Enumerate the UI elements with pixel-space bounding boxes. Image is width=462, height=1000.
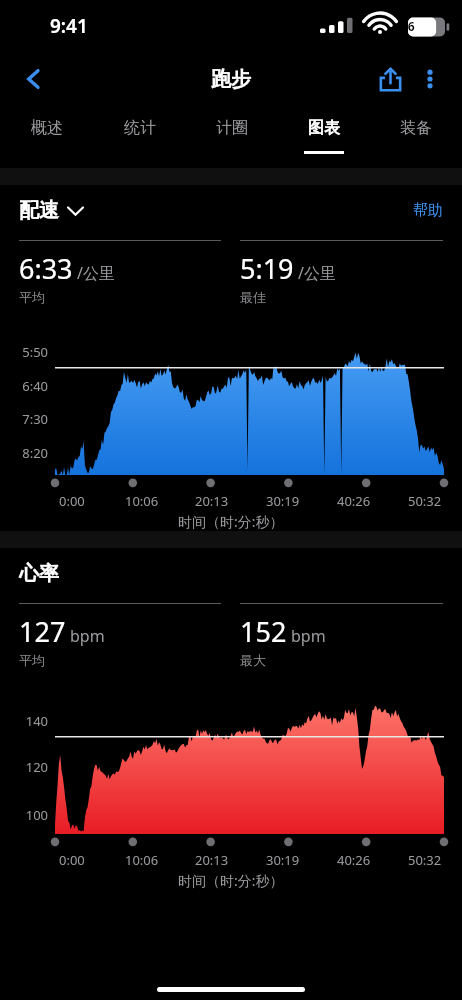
staticText: bpm [291, 625, 326, 647]
staticText: 50:32 [408, 492, 442, 510]
staticText: 最佳 [240, 289, 266, 305]
staticText: 帮助 [413, 201, 443, 220]
staticText: 30:19 [266, 851, 300, 869]
staticText: 40:26 [337, 851, 371, 869]
staticText: 40:26 [337, 492, 371, 510]
staticText: 5:50 [8, 343, 48, 361]
staticText: 平均 [19, 652, 45, 668]
staticText: 120 [8, 758, 48, 776]
button[interactable]: 概述 [0, 106, 93, 168]
staticText: 时间（时:分:秒） [178, 871, 284, 890]
staticText: 概述 [31, 118, 63, 138]
staticText: 7:30 [8, 410, 48, 428]
staticText: 140 [8, 712, 48, 730]
staticText: 配速 [19, 198, 59, 223]
staticText: /公里 [77, 262, 115, 284]
staticText: bpm [70, 625, 105, 647]
staticText: 图表 [308, 118, 340, 138]
staticText: 20:13 [195, 851, 229, 869]
staticText: 100 [8, 806, 48, 824]
button[interactable]: Share [370, 59, 410, 99]
button[interactable]: More options [410, 59, 450, 99]
staticText: 0:00 [59, 492, 85, 510]
staticText: 装备 [400, 118, 432, 138]
staticText: 最大 [240, 652, 266, 668]
staticText: 127 [19, 613, 66, 650]
staticText: 8:20 [8, 444, 48, 462]
button[interactable]: 计圈 [186, 106, 278, 168]
staticText: 152 [240, 613, 287, 650]
button[interactable]: Back [14, 59, 54, 99]
button[interactable]: 配速 [19, 198, 83, 223]
staticText: 10:06 [125, 492, 159, 510]
staticText: 时间（时:分:秒） [178, 512, 284, 531]
button[interactable]: 图表 [278, 106, 370, 168]
staticText: 6:40 [8, 377, 48, 395]
staticText: 平均 [19, 289, 45, 305]
staticText: 20:13 [195, 492, 229, 510]
staticText: 30:19 [266, 492, 300, 510]
staticText: 跑步 [211, 67, 251, 92]
staticText: 统计 [124, 118, 156, 138]
staticText: 76 [401, 18, 415, 34]
staticText: 0:00 [59, 851, 85, 869]
button[interactable]: 统计 [93, 106, 186, 168]
button[interactable]: 帮助 [413, 201, 443, 220]
button[interactable]: 装备 [370, 106, 462, 168]
staticText: 10:06 [125, 851, 159, 869]
staticText: 9:41 [50, 13, 88, 39]
staticText: 6:33 [19, 250, 73, 287]
staticText: /公里 [298, 262, 336, 284]
staticText: 50:32 [408, 851, 442, 869]
staticText: 5:19 [240, 250, 294, 287]
staticText: 心率 [19, 561, 59, 586]
staticText: 计圈 [216, 118, 248, 138]
